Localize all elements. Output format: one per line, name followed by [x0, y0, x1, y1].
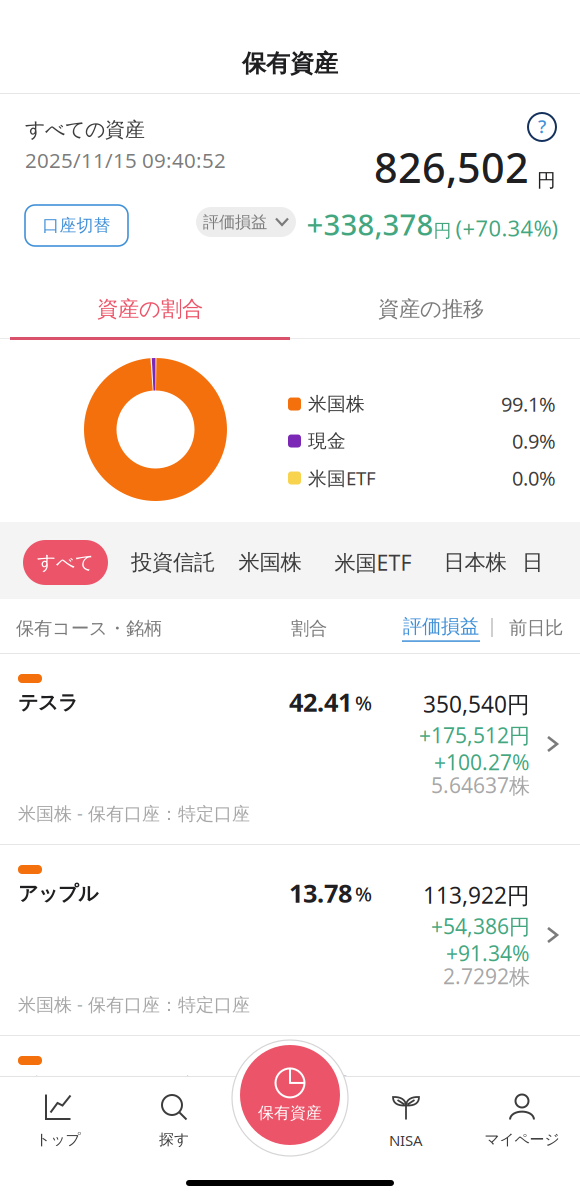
staticText: 2.7292株	[443, 962, 530, 990]
staticText: 保有資産	[242, 48, 338, 79]
staticText: すべての資産	[25, 117, 145, 142]
staticText: +100.27%	[434, 748, 530, 776]
staticText: 0.9%	[512, 427, 556, 455]
button[interactable]: 探す	[116, 1093, 232, 1149]
staticText: 資産の割合	[97, 296, 203, 322]
staticText: 米国株 - 保有口座：特定口座	[18, 992, 250, 1016]
staticText: 口座切替	[42, 215, 110, 236]
button[interactable]: すべて	[23, 540, 108, 585]
button[interactable]: アップル	[0, 845, 580, 1035]
staticText: 米国ETF	[308, 465, 376, 491]
button[interactable]: 評価損益	[196, 207, 296, 237]
staticText: 13.78	[289, 876, 352, 910]
button[interactable]: 米国株	[222, 540, 318, 585]
staticText: 前日比	[509, 616, 563, 639]
staticText: すべて	[37, 551, 94, 574]
staticText: 米国ETF	[334, 548, 411, 577]
staticText: 保有コース・銘柄	[16, 617, 162, 640]
staticText: +338,378	[306, 204, 433, 244]
staticText: 現金	[308, 429, 346, 453]
staticText: %	[355, 1071, 372, 1098]
staticText: 9.99	[303, 1067, 352, 1101]
staticText: 82,606円	[436, 1071, 530, 1101]
staticText: 米国株 - 保有口座：特定口座	[18, 1183, 250, 1200]
staticText: +30,112円	[431, 1103, 530, 1131]
staticText: NISA	[389, 1130, 423, 1150]
staticText: 日	[522, 549, 543, 576]
staticText: 投資信託	[131, 549, 215, 576]
button[interactable]: 資産の割合	[0, 261, 290, 337]
staticText: 保有資産	[258, 1103, 322, 1123]
staticText: 日本株	[443, 549, 506, 576]
button[interactable]: 資産の推移	[290, 261, 580, 337]
staticText: マイページ	[484, 1130, 559, 1149]
button[interactable]: 口座切替	[25, 205, 128, 246]
button[interactable]: NISA	[348, 1093, 464, 1149]
staticText: +54,386円	[431, 912, 530, 940]
button[interactable]: 前日比	[507, 615, 565, 641]
staticText: テスラ	[18, 690, 78, 715]
staticText: トップ	[35, 1130, 80, 1149]
button[interactable]: ヘルプ	[522, 107, 562, 147]
staticText: 113,922円	[423, 880, 530, 910]
button[interactable]: マイページ	[464, 1093, 580, 1149]
staticText: +175,512円	[419, 721, 530, 749]
staticText: アップル	[18, 881, 98, 906]
staticText: 0.0%	[512, 464, 556, 492]
button[interactable]: テスラ	[0, 654, 580, 844]
staticText: 円	[537, 169, 556, 192]
staticText: パランティア・テクノロジーズ	[18, 1072, 298, 1097]
staticText: 99.1%	[501, 390, 556, 418]
staticText: (+70.34%)	[455, 213, 558, 243]
staticText: %	[355, 689, 372, 716]
button[interactable]: トップ	[0, 1093, 116, 1149]
staticText: 評価損益	[203, 212, 267, 232]
button[interactable]: 米国ETF	[318, 540, 428, 585]
staticText: 探す	[159, 1130, 189, 1149]
staticText: ?	[538, 113, 546, 139]
staticText: 2025/11/15 09:40:52	[25, 146, 226, 174]
staticText: +91.34%	[446, 939, 530, 967]
staticText: %	[355, 880, 372, 907]
button[interactable]: 保有資産	[240, 1045, 340, 1145]
button[interactable]: 評価損益	[402, 615, 480, 641]
button[interactable]: 日本株	[428, 540, 522, 585]
staticText: 円	[433, 219, 451, 242]
staticText: 42.41	[289, 685, 352, 719]
staticText: 米国株	[308, 392, 365, 416]
staticText: 5.64637株	[431, 771, 530, 799]
button[interactable]: 投資信託	[108, 540, 222, 585]
staticText: 資産の推移	[378, 296, 484, 322]
staticText: 350,540円	[423, 689, 530, 719]
staticText: 米国株 - 保有口座：特定口座	[18, 801, 250, 825]
button[interactable]: パランティア・テクノロジーズ	[0, 1036, 580, 1200]
staticText: 評価損益	[403, 614, 479, 638]
staticText: 826,502	[374, 139, 529, 195]
staticText: 米国株	[238, 549, 301, 576]
staticText: 割合	[291, 617, 327, 640]
staticText: +57.36%	[446, 1130, 530, 1158]
